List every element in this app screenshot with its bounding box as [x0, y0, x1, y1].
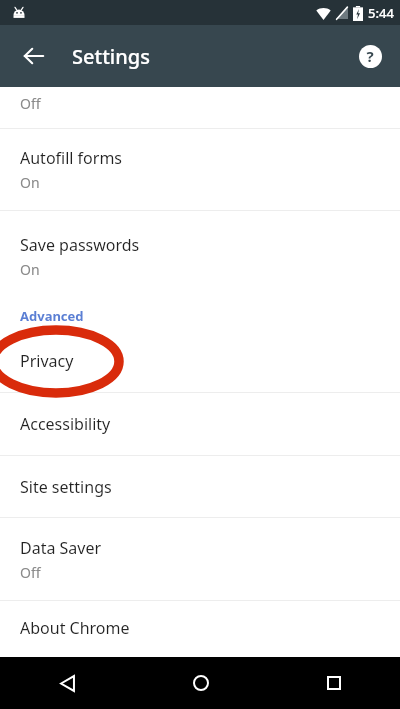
- staticText: Accessibility: [20, 413, 111, 435]
- staticText: Off: [20, 563, 41, 582]
- staticText: Save passwords: [20, 234, 140, 256]
- staticText: Privacy: [20, 350, 74, 372]
- staticText: On: [20, 173, 40, 192]
- staticText: On: [20, 260, 40, 279]
- button[interactable]: Autofill forms: [0, 129, 400, 210]
- button[interactable]: Privacy: [0, 330, 400, 392]
- staticText: Off: [20, 94, 41, 113]
- button[interactable]: Navigate up: [12, 34, 56, 78]
- staticText: Advanced: [20, 307, 84, 325]
- button[interactable]: Data Saver: [0, 518, 400, 600]
- staticText: ?: [366, 46, 374, 66]
- staticText: Data Saver: [20, 537, 102, 559]
- button[interactable]: Home: [177, 659, 225, 707]
- button[interactable]: Recent apps: [310, 659, 358, 707]
- button[interactable]: Off: [0, 87, 400, 128]
- button[interactable]: Help and feedback: [348, 34, 392, 78]
- staticText: Settings: [72, 43, 150, 70]
- button[interactable]: Site settings: [0, 456, 400, 517]
- staticText: 5:44: [368, 4, 394, 22]
- button[interactable]: Save passwords: [0, 211, 400, 302]
- staticText: Site settings: [20, 476, 112, 498]
- button[interactable]: Accessibility: [0, 393, 400, 455]
- button[interactable]: About Chrome: [0, 601, 400, 655]
- staticText: About Chrome: [20, 617, 130, 639]
- staticText: Autofill forms: [20, 147, 123, 169]
- button[interactable]: Back: [43, 659, 91, 707]
